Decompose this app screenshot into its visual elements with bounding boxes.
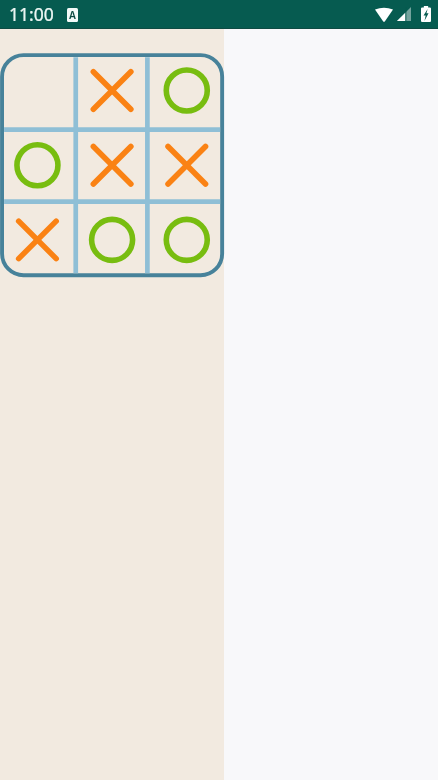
button[interactable]: Cell 9 <box>149 202 224 277</box>
button[interactable]: Cell 4 <box>0 127 74 202</box>
staticText: 11:00 <box>9 2 54 26</box>
button[interactable]: Cell 2 <box>74 53 149 127</box>
button[interactable]: Cell 5 <box>74 127 149 202</box>
button[interactable]: Cell 8 <box>74 202 149 277</box>
button[interactable]: Cell 7 <box>0 202 74 277</box>
button[interactable]: Cell 3 <box>149 53 224 127</box>
staticText: A <box>69 8 76 22</box>
button[interactable]: Cell 1 <box>0 53 74 127</box>
button[interactable]: Cell 6 <box>149 127 224 202</box>
